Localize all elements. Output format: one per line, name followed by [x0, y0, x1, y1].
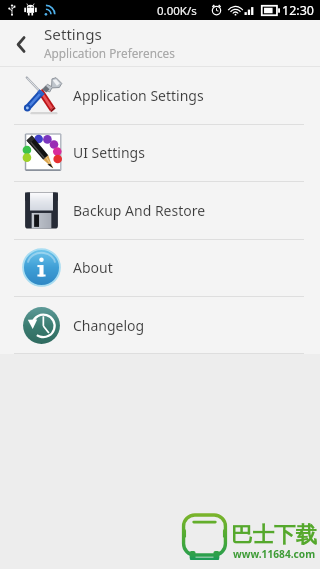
button[interactable]: UI Settings: [0, 124, 320, 181]
button[interactable]: About: [0, 239, 320, 296]
staticText: Application Settings: [73, 86, 204, 105]
button[interactable]: Application Settings: [0, 67, 320, 124]
staticText: 巴士下载: [231, 521, 317, 548]
staticText: 12:30: [282, 2, 314, 19]
staticText: About: [73, 258, 113, 277]
button[interactable]: Changelog: [0, 297, 320, 354]
button[interactable]: Back: [0, 20, 43, 67]
staticText: Backup And Restore: [73, 201, 206, 220]
staticText: Changelog: [73, 316, 145, 335]
staticText: 0.00K/s: [157, 3, 197, 19]
staticText: Settings: [44, 24, 102, 45]
staticText: Application Preferences: [44, 45, 175, 61]
staticText: UI Settings: [73, 143, 145, 162]
button[interactable]: Backup And Restore: [0, 182, 320, 239]
staticText: www.11684.com: [233, 547, 316, 561]
